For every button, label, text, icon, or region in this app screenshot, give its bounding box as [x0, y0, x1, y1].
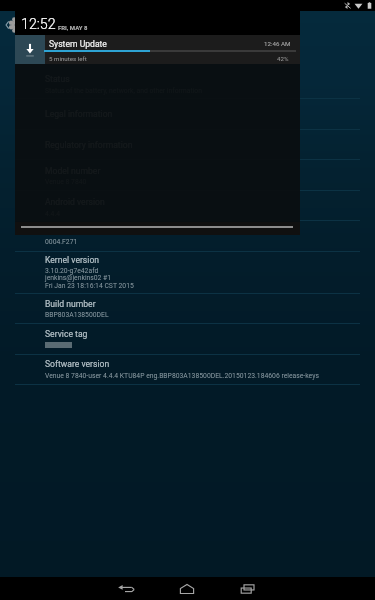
staticText: BBP803A138500DEL	[45, 311, 109, 319]
staticText: jenkins@jenkins02 #1	[45, 274, 112, 282]
staticText: Android version	[45, 197, 105, 207]
staticText: 0004.F271	[45, 238, 78, 246]
button[interactable]	[15, 250, 360, 293]
staticText: Model number	[45, 166, 101, 176]
staticText: 5 minutes left	[49, 55, 87, 62]
staticText: Build number	[45, 299, 96, 309]
staticText: Software version	[45, 359, 110, 369]
staticText: FRI, MAY 8	[58, 24, 88, 31]
button[interactable]	[15, 354, 360, 384]
staticText: Regulatory information	[45, 140, 133, 150]
button[interactable]	[15, 161, 360, 190]
button[interactable]	[15, 324, 360, 354]
button[interactable]: Home	[172, 577, 202, 600]
staticText: Kernel version	[45, 255, 100, 265]
button[interactable]	[15, 294, 360, 323]
staticText: Status	[45, 74, 70, 84]
button[interactable]: Navigate up	[0, 12, 26, 37]
button[interactable]	[15, 222, 360, 251]
staticText: Service tag	[45, 329, 88, 339]
button[interactable]	[15, 192, 360, 220]
button[interactable]	[15, 104, 360, 129]
staticText: Baseband version	[45, 227, 113, 237]
staticText: 3.10.20-g7e42afd	[45, 267, 99, 275]
button[interactable]	[15, 69, 360, 98]
button[interactable]: System Update	[15, 35, 300, 64]
staticText: Legal information	[45, 109, 113, 119]
staticText: 12:46 AM	[264, 40, 291, 47]
button[interactable]: Close notification shade	[15, 222, 300, 235]
button[interactable]: Recent apps	[233, 577, 263, 600]
button[interactable]	[15, 135, 360, 159]
staticText: System Update	[49, 39, 107, 49]
staticText: 12:52	[21, 16, 56, 33]
staticText: Fri Jan 23 18:16:14 CST 2015	[45, 282, 134, 290]
button[interactable]: Back	[112, 577, 142, 600]
staticText: 42%	[277, 55, 289, 62]
staticText: Venue 8 7840-user 4.4.4 KTU84P eng.BBP80…	[45, 372, 319, 380]
